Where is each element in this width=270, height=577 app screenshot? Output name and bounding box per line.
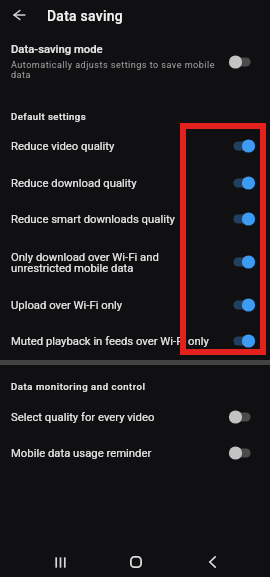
staticText: Muted playback in feeds over Wi-Fi only — [11, 335, 209, 348]
button[interactable]: Only download over Wi-Fi — [226, 253, 256, 271]
staticText: Default settings — [11, 111, 87, 122]
button[interactable] — [0, 201, 270, 237]
button[interactable]: Reduce download quality — [226, 174, 256, 192]
staticText: Data monitoring and control — [11, 381, 146, 392]
button[interactable]: Back — [191, 547, 233, 577]
staticText: Only download over Wi-Fi and — [11, 251, 159, 264]
button[interactable] — [0, 435, 270, 471]
button[interactable] — [0, 248, 270, 278]
staticText: data — [11, 70, 31, 81]
staticText: Reduce download quality — [11, 177, 137, 190]
button[interactable]: Back — [5, 2, 33, 28]
staticText: Data saving — [47, 8, 123, 24]
staticText: Mobile data usage reminder — [11, 447, 152, 460]
staticText: Automatically adjusts settings to save m… — [11, 60, 215, 71]
button[interactable] — [0, 399, 270, 435]
button[interactable]: Mobile data usage reminder — [226, 444, 256, 462]
button[interactable]: Home — [115, 547, 157, 577]
button[interactable]: Reduce video quality — [226, 137, 256, 155]
button[interactable] — [0, 287, 270, 323]
button[interactable] — [0, 165, 270, 201]
staticText: Reduce video quality — [11, 140, 115, 153]
staticText: Upload over Wi-Fi only — [11, 299, 123, 312]
button[interactable] — [0, 38, 270, 84]
button[interactable]: Reduce smart downloads quality — [226, 210, 256, 228]
button[interactable]: Select quality for every video — [226, 408, 256, 426]
staticText: Data-saving mode — [11, 43, 103, 56]
button[interactable] — [0, 323, 270, 359]
button[interactable]: Upload over Wi-Fi only — [226, 296, 256, 314]
staticText: Reduce smart downloads quality — [11, 213, 175, 226]
staticText: Select quality for every video — [11, 411, 155, 424]
button[interactable]: Muted playback in feeds over Wi-Fi only — [226, 332, 256, 350]
staticText: unrestricted mobile data — [11, 262, 134, 275]
button[interactable]: Data-saving mode — [226, 53, 256, 71]
button[interactable]: Recent apps — [40, 547, 82, 577]
button[interactable] — [0, 128, 270, 164]
